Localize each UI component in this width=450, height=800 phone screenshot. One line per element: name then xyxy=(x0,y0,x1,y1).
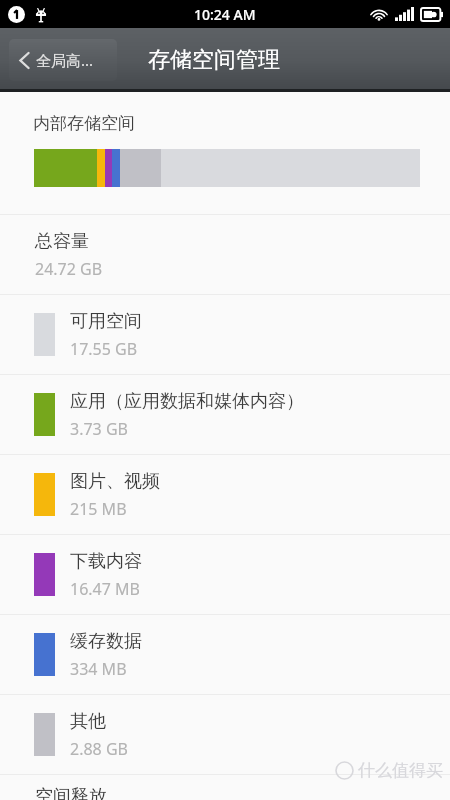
button[interactable]: 应用（应用数据和媒体内容） xyxy=(0,375,450,454)
staticText: 空间释放 xyxy=(35,785,107,800)
staticText: 应用（应用数据和媒体内容） xyxy=(70,390,304,413)
button[interactable]: 其他 xyxy=(0,695,450,774)
staticText: 可用空间 xyxy=(70,310,142,333)
staticText: 3.73 GB xyxy=(70,418,128,440)
staticText: 什么值得买 xyxy=(358,760,443,781)
button[interactable]: 图片、视频 xyxy=(0,455,450,534)
staticText: 内部存储空间 xyxy=(33,113,135,134)
button[interactable]: 下载内容 xyxy=(0,535,450,614)
button[interactable]: 可用空间 xyxy=(0,295,450,374)
staticText: 存储空间管理 xyxy=(148,46,280,74)
staticText: 其他 xyxy=(70,710,106,733)
staticText: 缓存数据 xyxy=(70,630,142,653)
button[interactable]: 缓存数据 xyxy=(0,615,450,694)
staticText: 图片、视频 xyxy=(70,470,160,493)
button[interactable]: 总容量 xyxy=(0,215,450,294)
staticText: 215 MB xyxy=(70,498,127,520)
staticText: 334 MB xyxy=(70,658,127,680)
staticText: 总容量 xyxy=(35,230,89,253)
button[interactable]: 空间释放 xyxy=(0,775,450,800)
staticText: 全局高... xyxy=(36,50,94,70)
staticText: 24.72 GB xyxy=(35,258,103,280)
staticText: 下载内容 xyxy=(70,550,142,573)
staticText: 17.55 GB xyxy=(70,338,138,360)
staticText: 16.47 MB xyxy=(70,578,140,600)
staticText: 2.88 GB xyxy=(70,738,128,760)
staticText: 10:24 AM xyxy=(194,5,256,24)
button[interactable]: 全局高... xyxy=(9,39,117,81)
